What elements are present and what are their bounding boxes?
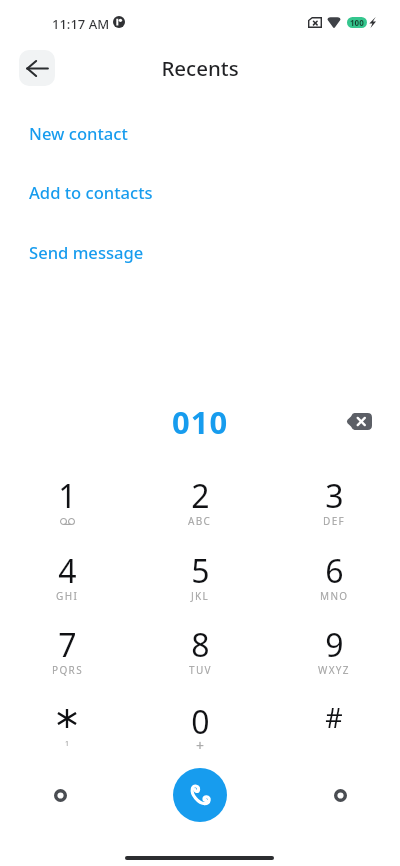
staticText: PQRS [52, 663, 83, 677]
button[interactable]: Options [45, 780, 75, 810]
button[interactable]: Video call [325, 780, 355, 810]
button[interactable]: 9 [279, 623, 389, 693]
button[interactable]: Back [19, 50, 55, 86]
staticText: 8 [191, 623, 210, 663]
staticText: 3 [325, 474, 344, 514]
staticText: 4 [58, 549, 77, 589]
button[interactable]: Send message [0, 230, 400, 274]
button[interactable]: New contact [0, 111, 400, 155]
button[interactable]: Call [173, 768, 227, 822]
staticText: Send message [29, 241, 144, 264]
button[interactable]: 1 [12, 474, 122, 544]
staticText: WXYZ [318, 663, 350, 677]
staticText: TUV [189, 663, 212, 677]
button[interactable]: # [279, 700, 389, 770]
button[interactable]: 3 [279, 474, 389, 544]
button[interactable]: 5 [145, 549, 255, 619]
button[interactable]: 0 [145, 700, 255, 770]
staticText: 1 [58, 474, 77, 514]
staticText: 1 [65, 739, 70, 749]
staticText: 7 [58, 623, 77, 663]
staticText: GHI [56, 589, 79, 603]
button[interactable]: 6 [279, 549, 389, 619]
staticText: 100 [350, 17, 364, 28]
button[interactable]: 1 [12, 700, 122, 770]
staticText: + [196, 736, 205, 750]
staticText: New contact [29, 122, 128, 145]
staticText: DEF [323, 514, 346, 528]
staticText: JKL [191, 589, 210, 603]
staticText: 010 [172, 401, 229, 443]
staticText: 6 [325, 549, 344, 589]
button[interactable]: Add to contacts [0, 170, 400, 214]
staticText: MNO [320, 589, 349, 603]
staticText: ABC [188, 514, 212, 528]
staticText: 9 [325, 623, 344, 663]
staticText: 2 [191, 474, 210, 514]
button[interactable]: 2 [145, 474, 255, 544]
staticText: Recents [0, 54, 400, 82]
staticText: 0 [191, 700, 210, 740]
button[interactable]: 7 [12, 623, 122, 693]
button[interactable]: Backspace [336, 400, 380, 444]
staticText: 5 [191, 549, 210, 589]
button[interactable]: 8 [145, 623, 255, 693]
button[interactable]: 4 [12, 549, 122, 619]
staticText: # [325, 699, 343, 736]
staticText: Add to contacts [29, 181, 153, 204]
staticText: 11:17 AM [52, 15, 110, 33]
